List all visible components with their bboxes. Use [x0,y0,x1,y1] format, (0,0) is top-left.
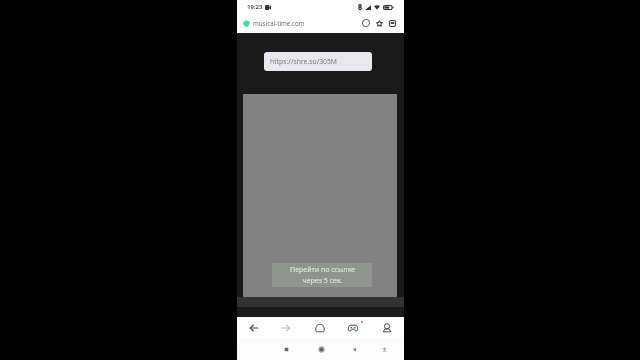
button[interactable]: Bookmark [373,17,385,29]
button[interactable]: Home [309,338,333,360]
button[interactable]: Accessibility [372,338,396,360]
button[interactable]: Forward [271,317,301,338]
staticText: https://shre.su/305M [270,57,338,66]
button[interactable]: Recents [274,338,298,360]
button[interactable]: Back [239,317,269,338]
button[interactable]: Profile [372,317,402,338]
button[interactable]: Перейти по ссылке через 5 сек. [272,263,372,287]
staticText: Перейти по ссылке через 5 сек. [290,265,355,285]
button[interactable]: Games [338,317,368,338]
button[interactable]: Home [305,317,335,338]
button[interactable]: Back [342,338,366,360]
staticText: musical-time.com [253,19,305,27]
button[interactable]: https://shre.su/305M [264,52,372,71]
button[interactable]: Reload [360,17,372,29]
button[interactable]: Tabs [386,17,398,29]
staticText: 19:23 [247,3,263,11]
